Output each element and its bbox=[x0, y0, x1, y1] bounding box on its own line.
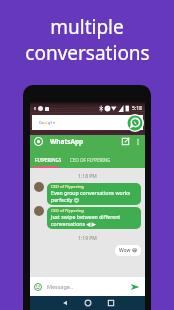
staticText: 1:18 PM bbox=[30, 173, 145, 180]
button[interactable]: CEO of Flypering bbox=[47, 183, 141, 205]
staticText: G bbox=[39, 120, 42, 125]
staticText: perfectly 😊 bbox=[51, 196, 80, 203]
staticText: e bbox=[53, 120, 56, 125]
staticText: g bbox=[48, 120, 51, 125]
staticText: o bbox=[45, 120, 48, 125]
staticText: CEO of Flypering bbox=[51, 184, 84, 189]
staticText: conversations bbox=[25, 40, 150, 66]
button[interactable]: CEO of Flypering bbox=[47, 207, 141, 229]
staticText: CEO OF FLYPERING bbox=[70, 157, 111, 163]
staticText: multiple bbox=[50, 14, 124, 40]
staticText: CEO of Flypering bbox=[51, 208, 84, 213]
button[interactable]: Emoji bbox=[34, 283, 42, 291]
staticText: l bbox=[51, 120, 53, 125]
staticText: conversations ◀ ▶ bbox=[51, 220, 96, 227]
staticText: 5:18 bbox=[132, 105, 142, 112]
button[interactable]: Home bbox=[84, 299, 92, 307]
button[interactable]: G bbox=[32, 115, 143, 130]
button[interactable]: FLYPERINGS bbox=[30, 157, 67, 163]
button[interactable]: CEO OF FLYPERING bbox=[67, 157, 114, 163]
staticText: WhatsApp bbox=[50, 137, 84, 146]
staticText: Just swipe between different bbox=[51, 213, 121, 220]
button[interactable]: Wow 😂 bbox=[115, 245, 141, 256]
button[interactable]: WhatsApp bbox=[126, 114, 144, 132]
button[interactable]: New chat bbox=[121, 137, 130, 146]
button[interactable]: Back bbox=[61, 299, 69, 307]
staticText: Even group conversations works bbox=[51, 189, 131, 196]
button[interactable]: Send bbox=[130, 282, 140, 292]
staticText: 1:19 PM bbox=[30, 235, 145, 242]
staticText: FLYPERINGS bbox=[35, 157, 62, 163]
staticText: Message.. bbox=[47, 283, 73, 290]
staticText: o bbox=[42, 120, 45, 125]
staticText: Wow 😂 bbox=[119, 247, 138, 254]
button[interactable]: Recents bbox=[107, 299, 115, 307]
button[interactable]: More options bbox=[134, 138, 142, 146]
